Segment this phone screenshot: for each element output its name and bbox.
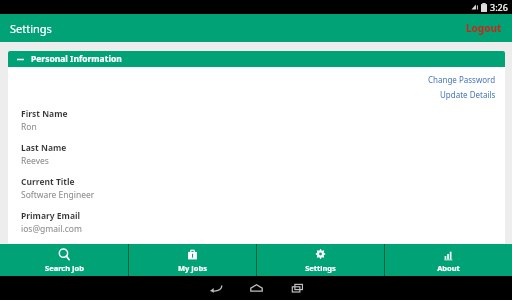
staticText: Personal Information [31,53,122,65]
button[interactable]: My Jobs [129,244,256,276]
button[interactable]: Logout [456,15,512,41]
staticText: Reeves [21,155,49,167]
staticText: Settings [10,21,52,36]
staticText: First Name [21,108,68,120]
staticText: Logout [466,21,502,35]
staticText: Change Password [428,74,496,85]
staticText: Software Engineer [21,189,95,201]
button[interactable]: Back [195,283,236,293]
button[interactable]: About [385,244,512,276]
staticText: Primary Email [21,210,81,222]
button[interactable]: Update Details [440,88,496,101]
staticText: My Jobs [178,263,207,273]
button[interactable]: Personal Information [8,51,505,67]
button[interactable]: Settings [257,244,384,276]
button[interactable]: Recents [277,283,318,293]
button[interactable]: Change Password [428,73,496,86]
staticText: Update Details [440,89,496,100]
staticText: About [437,263,460,273]
button[interactable]: Home [236,283,277,293]
staticText: Settings [305,263,336,273]
staticText: 3:26 [490,1,508,13]
staticText: Current Title [21,176,75,188]
staticText: Ron [21,121,37,133]
other: About [442,248,455,261]
button[interactable]: Search Job [0,244,128,276]
other: My Jobs [186,248,199,261]
other: Search Job [58,248,71,261]
other: Settings [314,248,327,261]
staticText: Search Job [45,263,84,273]
staticText: ios@gmail.com [21,223,82,235]
staticText: Last Name [21,142,67,154]
